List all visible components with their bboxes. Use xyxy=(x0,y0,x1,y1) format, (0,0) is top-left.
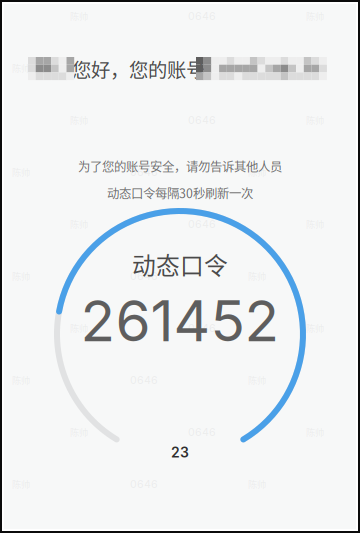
staticText: 陈帅 xyxy=(12,269,30,283)
staticText: 您好，您的账号 xyxy=(72,55,205,83)
staticText: 陈帅 xyxy=(70,425,88,439)
staticText: 陈帅 xyxy=(248,269,266,283)
staticText: 陈帅 xyxy=(306,113,324,127)
staticText: 陈帅 xyxy=(306,425,324,439)
staticText: 陈帅 xyxy=(306,529,324,533)
staticText: 0646 xyxy=(188,321,216,334)
staticText: 261452 xyxy=(80,286,279,355)
staticText: 陈帅 xyxy=(70,113,88,127)
staticText: 动态口令每隔30秒刷新一次 xyxy=(107,184,253,202)
staticText: 0646 xyxy=(130,477,158,490)
staticText: 陈帅 xyxy=(12,373,30,387)
staticText: 陈帅 xyxy=(12,165,30,179)
staticText: 陈帅 xyxy=(248,373,266,387)
staticText: 陈帅 xyxy=(70,321,88,335)
staticText: 0646 xyxy=(188,217,216,230)
staticText: 陈帅 xyxy=(12,477,30,491)
staticText: 陈帅 xyxy=(70,9,88,23)
staticText: 23 xyxy=(171,444,189,461)
staticText: 0646 xyxy=(188,425,216,438)
staticText: 0646 xyxy=(130,61,158,74)
staticText: 陈帅 xyxy=(70,217,88,231)
staticText: 0646 xyxy=(130,373,158,386)
staticText: 陈帅 xyxy=(70,529,88,533)
staticText: 陈帅 xyxy=(306,9,324,23)
staticText: 陈帅 xyxy=(12,61,30,75)
staticText: 0646 xyxy=(130,269,158,282)
staticText: 陈帅 xyxy=(248,477,266,491)
staticText: 为了您的账号安全，请勿告诉其他人员 xyxy=(78,157,282,175)
staticText: 0646 xyxy=(188,9,216,22)
staticText: 陈帅 xyxy=(306,217,324,231)
staticText: 陈帅 xyxy=(248,61,266,75)
staticText: 0646 xyxy=(188,529,216,533)
staticText: 陈帅 xyxy=(306,321,324,335)
staticText: 陈帅 xyxy=(248,165,266,179)
staticText: 动态口令 xyxy=(132,247,228,281)
staticText: 0646 xyxy=(130,165,158,178)
staticText: 0646 xyxy=(188,113,216,126)
